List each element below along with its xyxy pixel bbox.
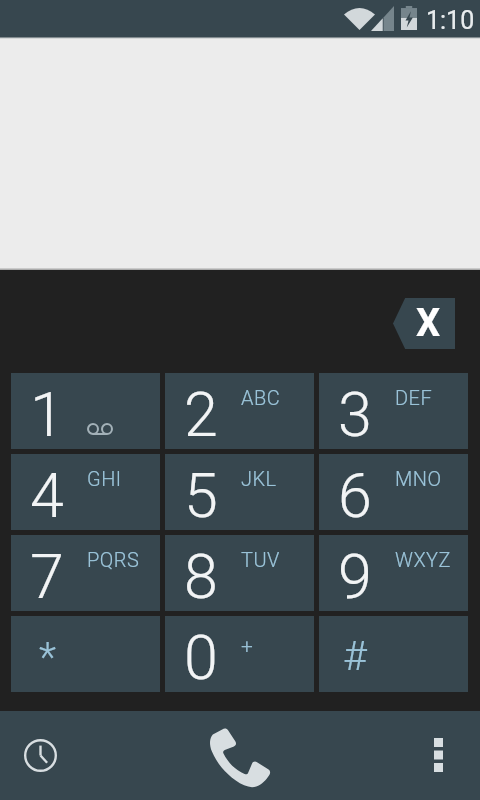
button[interactable]: Call history [10, 725, 71, 786]
button[interactable]: 6 [319, 454, 468, 530]
staticText: 2 [184, 379, 218, 450]
staticText: 0 [184, 622, 218, 693]
button[interactable]: 9 [319, 535, 468, 611]
button[interactable]: Call [198, 719, 280, 795]
button[interactable]: 5 [165, 454, 314, 530]
staticText: 1 [30, 379, 64, 450]
staticText: ABC [241, 386, 281, 409]
staticText: 5 [184, 460, 218, 531]
staticText: MNO [395, 467, 442, 490]
staticText: 9 [338, 541, 372, 612]
button[interactable]: 8 [165, 535, 314, 611]
button[interactable]: * [11, 616, 160, 692]
staticText: JKL [241, 467, 277, 490]
button[interactable]: More options [410, 724, 466, 785]
staticText: 6 [338, 460, 372, 531]
button[interactable]: 7 [11, 535, 160, 611]
button[interactable]: # [319, 616, 468, 692]
button[interactable]: Backspace [393, 298, 455, 349]
staticText: 1:10 [426, 6, 475, 35]
button[interactable]: 4 [11, 454, 160, 530]
staticText: * [39, 634, 56, 681]
staticText: 3 [338, 379, 372, 450]
staticText: # [343, 632, 367, 680]
staticText: X [416, 301, 441, 346]
staticText: TUV [241, 548, 280, 571]
staticText: PQRS [87, 548, 140, 571]
staticText: + [241, 634, 254, 659]
button[interactable]: 3 [319, 373, 468, 449]
staticText: 8 [184, 541, 218, 612]
button[interactable]: 2 [165, 373, 314, 449]
staticText: DEF [395, 386, 433, 409]
staticText: WXYZ [395, 548, 451, 571]
staticText: GHI [87, 467, 122, 490]
button[interactable]: 0 [165, 616, 314, 692]
button[interactable]: 1 [11, 373, 160, 449]
staticText: 7 [30, 541, 64, 612]
staticText: 4 [30, 460, 64, 531]
